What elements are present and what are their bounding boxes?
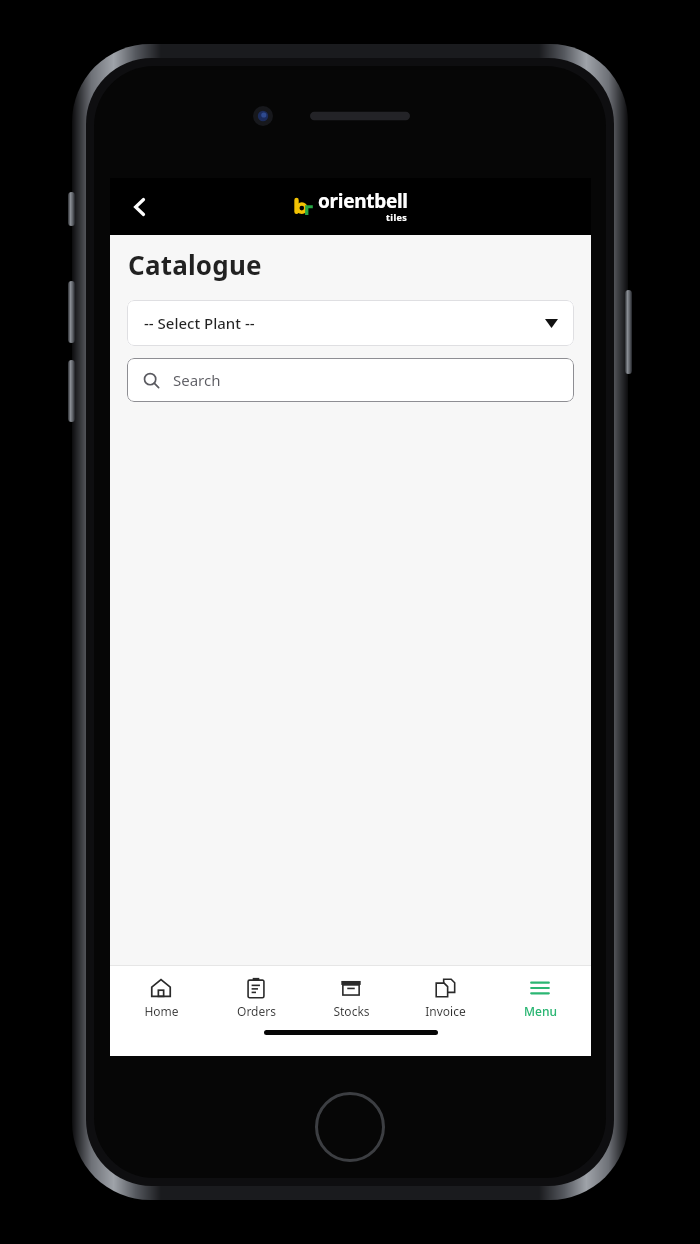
- staticText: Menu: [524, 1003, 557, 1019]
- staticText: Search: [173, 370, 221, 390]
- button[interactable]: Stocks: [307, 966, 395, 1030]
- staticText: orientbell: [318, 188, 408, 214]
- staticText: Orders: [237, 1003, 276, 1019]
- button[interactable]: Menu: [496, 966, 584, 1030]
- staticText: tiles: [386, 211, 408, 223]
- button[interactable]: Invoice: [401, 966, 489, 1030]
- staticText: Catalogue: [128, 247, 262, 282]
- staticText: Home: [144, 1003, 179, 1019]
- button[interactable]: Home: [117, 966, 205, 1030]
- button[interactable]: Back: [118, 185, 162, 229]
- staticText: Stocks: [333, 1003, 370, 1019]
- button[interactable]: -- Select Plant --: [127, 300, 574, 346]
- staticText: -- Select Plant --: [144, 313, 255, 333]
- button[interactable]: Search: [127, 358, 574, 402]
- button[interactable]: Orders: [212, 966, 300, 1030]
- staticText: Invoice: [425, 1003, 466, 1019]
